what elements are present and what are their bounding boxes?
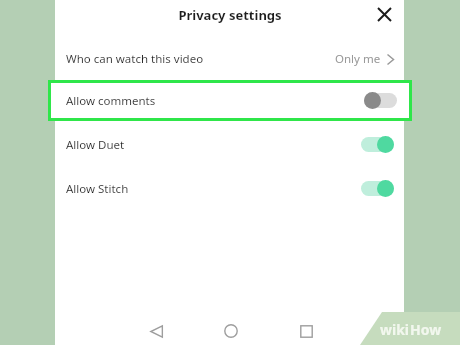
button[interactable]: Allow Stitch xyxy=(55,171,404,206)
staticText: Only me xyxy=(335,51,381,67)
button[interactable]: Toggle on xyxy=(361,180,394,197)
button[interactable]: Home xyxy=(217,317,245,345)
staticText: Privacy settings xyxy=(178,6,282,24)
button[interactable]: Toggle on xyxy=(361,136,394,153)
button[interactable]: Recent apps xyxy=(292,317,320,345)
button[interactable]: Close xyxy=(370,0,398,28)
button[interactable]: Allow Duet xyxy=(55,127,404,162)
staticText: Allow comments xyxy=(66,93,156,109)
staticText: Allow Stitch xyxy=(66,181,129,197)
staticText: Who can watch this video xyxy=(66,51,204,67)
staticText: wiki xyxy=(380,320,410,338)
button[interactable]: Who can watch this video xyxy=(55,42,404,76)
staticText: How xyxy=(410,320,442,338)
staticText: Allow Duet xyxy=(66,137,125,153)
button[interactable]: Toggle off xyxy=(364,92,397,109)
button[interactable]: Allow comments xyxy=(51,83,409,118)
button[interactable]: Back xyxy=(142,317,170,345)
